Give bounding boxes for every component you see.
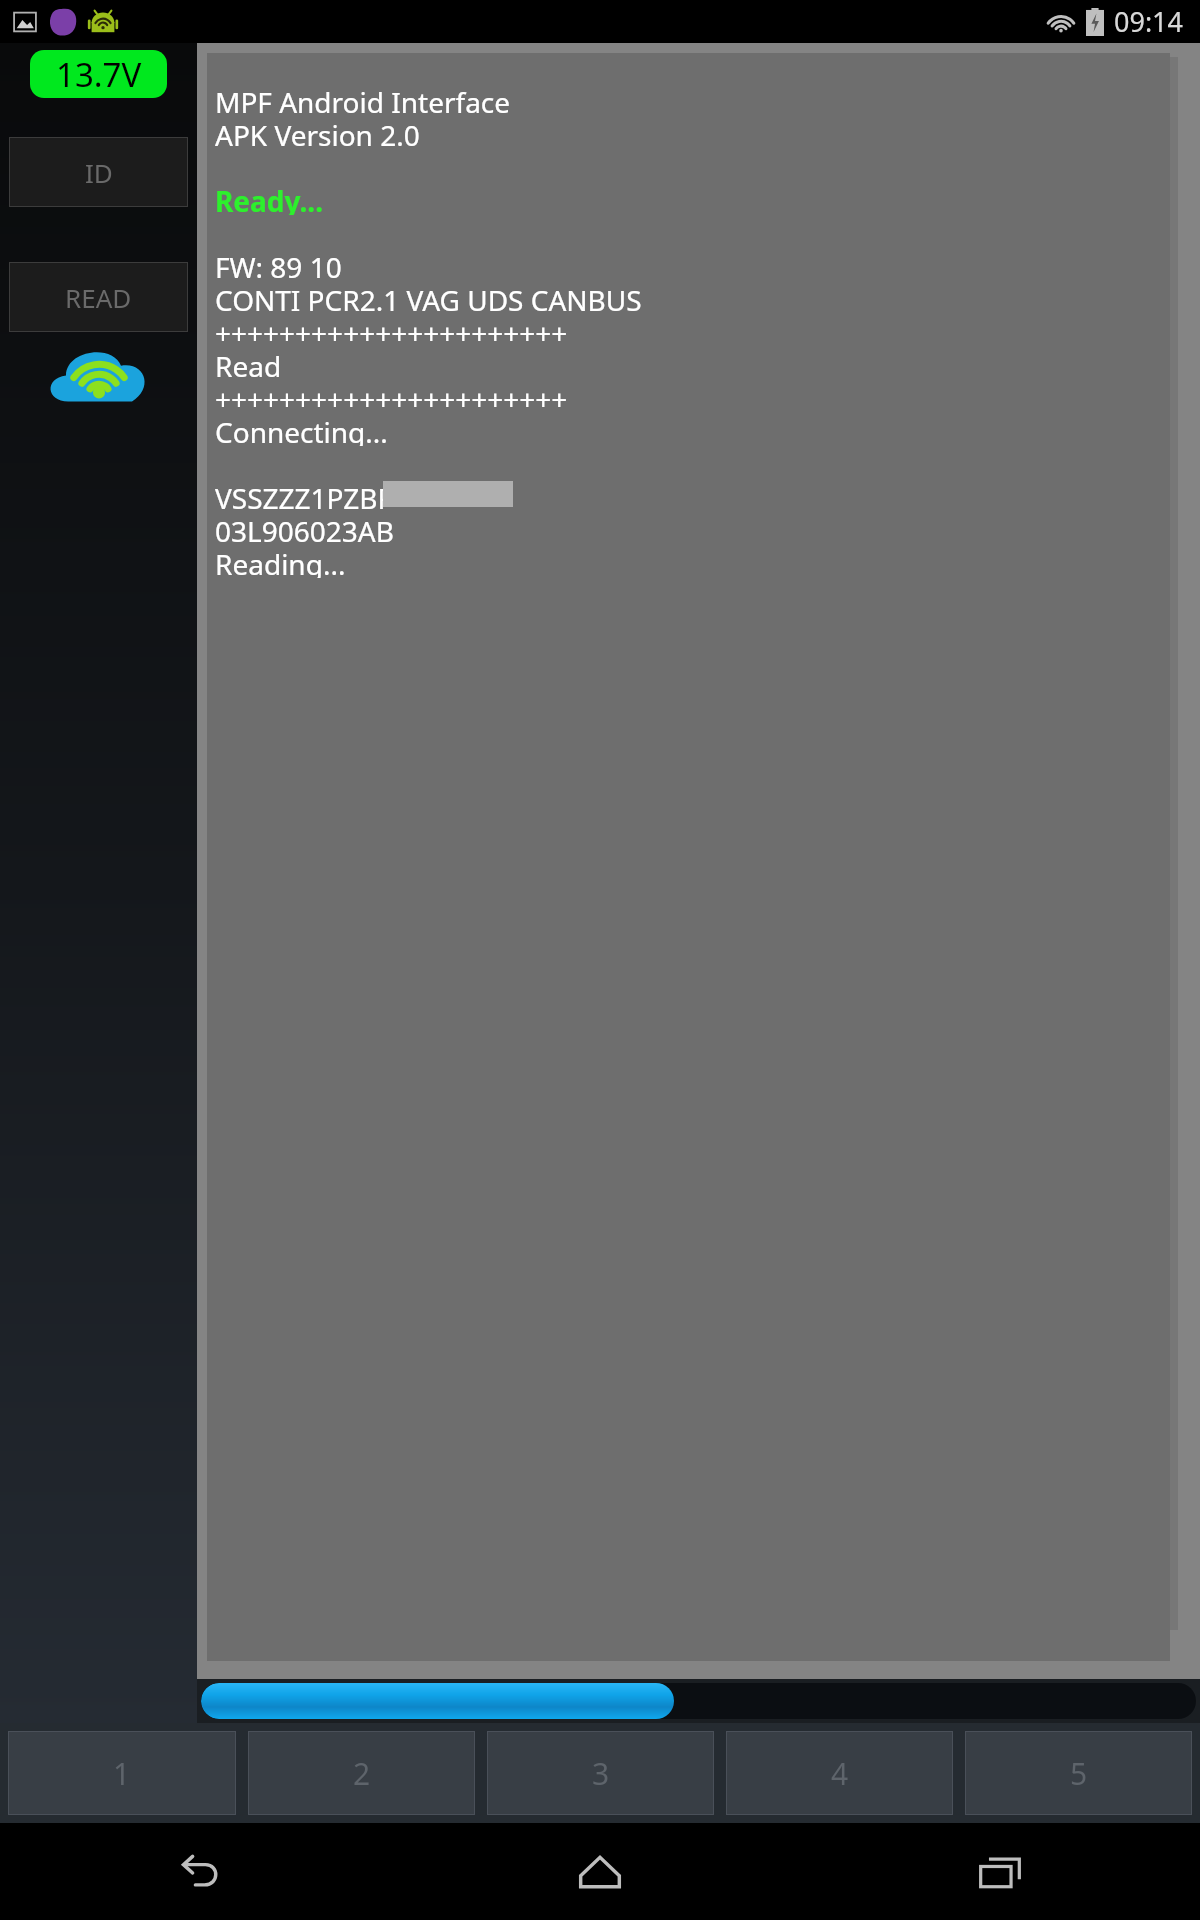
button[interactable]: 3: [487, 1731, 714, 1815]
staticText: Connecting...: [215, 413, 388, 446]
button[interactable]: 5: [965, 1731, 1192, 1815]
button[interactable]: 4: [726, 1731, 953, 1815]
staticText: 2: [353, 1753, 371, 1794]
staticText: 4: [831, 1753, 849, 1794]
staticText: CONTI PCR2.1 VAG UDS CANBUS: [215, 281, 642, 314]
staticText: MPF Android Interface: [215, 83, 511, 116]
staticText: Ready...: [215, 182, 324, 215]
staticText: ++++++++++++++++++++++: [215, 380, 568, 413]
button[interactable]: READ: [9, 262, 188, 332]
staticText: FW: 89 10: [215, 248, 342, 281]
staticText: 5: [1070, 1753, 1088, 1794]
button[interactable]: Back: [0, 1823, 400, 1920]
button[interactable]: 13.7V: [30, 50, 167, 98]
staticText: VSSZZZ1PZBF: [215, 479, 393, 512]
button[interactable]: 2: [248, 1731, 475, 1815]
staticText: 1: [113, 1753, 131, 1794]
staticText: Read: [215, 347, 282, 380]
button[interactable]: ID: [9, 137, 188, 207]
staticText: 03L906023AB: [215, 512, 394, 545]
staticText: APK Version 2.0: [215, 116, 420, 149]
staticText: ID: [85, 155, 113, 190]
staticText: 09:14: [1114, 3, 1184, 40]
button[interactable]: Cloud connection: [44, 342, 154, 412]
button[interactable]: Recent apps: [800, 1823, 1200, 1920]
staticText: ++++++++++++++++++++++: [215, 314, 568, 347]
button[interactable]: Home: [400, 1823, 800, 1920]
staticText: READ: [65, 280, 132, 315]
staticText: 3: [592, 1753, 610, 1794]
button[interactable]: 1: [8, 1731, 236, 1815]
staticText: 13.7V: [56, 52, 142, 97]
staticText: Reading...: [215, 545, 346, 578]
